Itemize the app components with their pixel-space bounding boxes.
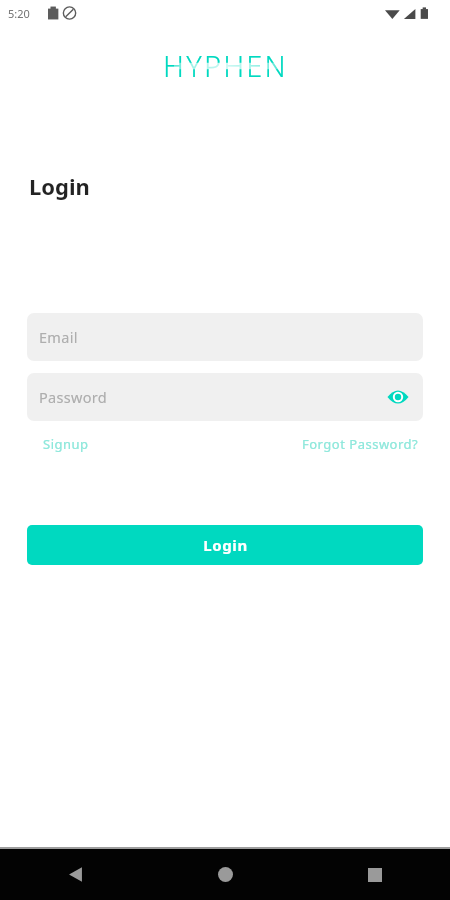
staticText: Login	[203, 535, 248, 555]
staticText: HYPHEN	[163, 46, 288, 85]
staticText: 5:20	[8, 6, 30, 21]
staticText: Login	[29, 171, 90, 201]
staticText: Email	[39, 327, 78, 347]
staticText: Forgot Password?	[302, 435, 419, 453]
button[interactable]: Password	[27, 373, 423, 421]
button[interactable]: Home	[150, 849, 300, 900]
button[interactable]: Recent apps	[300, 849, 450, 900]
button[interactable]: Show password	[383, 382, 413, 412]
button[interactable]: Login	[27, 525, 423, 565]
staticText: Signup	[43, 435, 89, 453]
button[interactable]: Email	[27, 313, 423, 361]
button[interactable]: Signup	[29, 431, 103, 457]
button[interactable]: Back	[0, 849, 150, 900]
staticText: Password	[39, 387, 107, 407]
button[interactable]: Forgot Password?	[300, 431, 421, 457]
